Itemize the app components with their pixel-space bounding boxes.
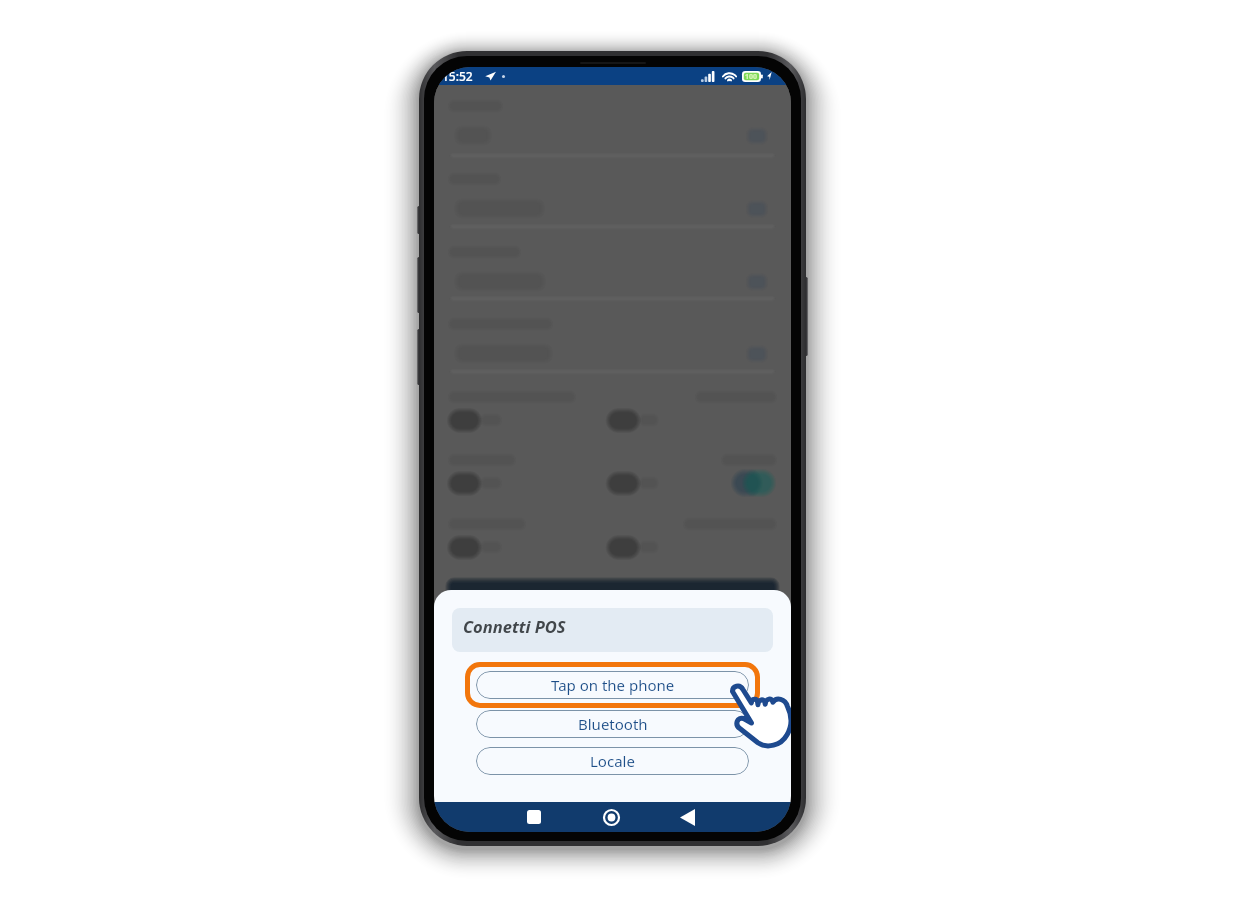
button[interactable]: Connetti POS (452, 608, 773, 652)
button[interactable]: Home (594, 804, 628, 830)
button[interactable]: Recent apps (517, 804, 551, 830)
button[interactable]: Back (670, 804, 704, 830)
staticText: 15:52 (442, 68, 473, 84)
staticText: Tap on the phone (551, 675, 675, 695)
staticText: Connetti POS (463, 615, 566, 637)
staticText: Bluetooth (578, 714, 648, 734)
staticText: 100 (745, 72, 758, 82)
button[interactable]: Locale (476, 747, 749, 775)
staticText: Locale (590, 751, 635, 771)
button[interactable]: Bluetooth (476, 710, 749, 738)
button[interactable]: Tap on the phone (476, 671, 749, 699)
